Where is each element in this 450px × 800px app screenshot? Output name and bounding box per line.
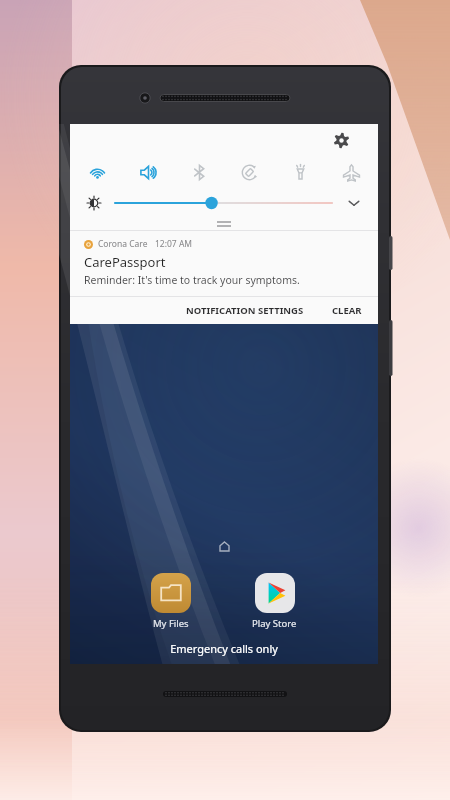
button[interactable]: Auto brightness <box>86 195 102 211</box>
staticText: Reminder: It's time to track your sympto… <box>84 273 300 287</box>
staticText: My Files <box>153 617 189 630</box>
button[interactable]: NOTIFICATION SETTINGS <box>178 297 312 324</box>
staticText: CLEAR <box>332 304 362 317</box>
button[interactable]: Play Store <box>246 571 303 632</box>
button[interactable]: Wi-Fi <box>80 155 114 189</box>
staticText: 12:07 AM <box>155 238 193 250</box>
button[interactable]: Auto rotate <box>232 155 266 189</box>
button[interactable]: Flashlight <box>283 155 317 189</box>
other: Home page <box>217 539 231 553</box>
staticText: Play Store <box>252 617 297 630</box>
staticText: Emergency calls only <box>170 641 278 656</box>
button[interactable]: Bluetooth <box>182 155 216 189</box>
button[interactable]: CLEAR <box>324 297 378 324</box>
staticText: Corona Care <box>98 238 148 250</box>
button[interactable]: Settings <box>330 129 352 151</box>
staticText: CarePassport <box>84 253 166 271</box>
button[interactable] <box>115 193 332 213</box>
staticText: NOTIFICATION SETTINGS <box>186 304 304 317</box>
button[interactable]: Sound <box>131 155 165 189</box>
button[interactable]: Corona Care <box>70 231 378 296</box>
button[interactable]: My Files <box>145 571 197 632</box>
button[interactable]: Expand quick settings <box>344 193 364 213</box>
button[interactable]: Airplane mode <box>334 155 368 189</box>
